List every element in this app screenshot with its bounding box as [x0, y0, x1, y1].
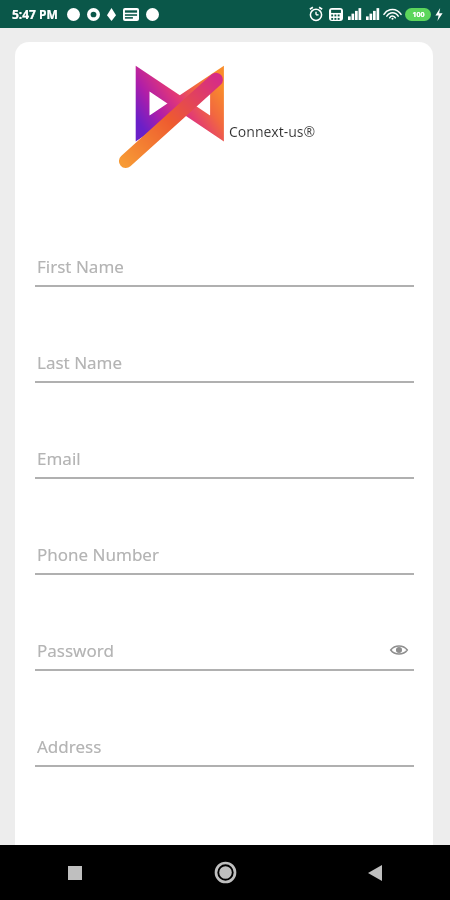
button[interactable]: Home — [150, 845, 300, 900]
staticText: Password — [37, 639, 114, 662]
button[interactable]: Back — [300, 845, 450, 900]
staticText: 5:47 PM — [12, 6, 58, 22]
staticText: Phone Number — [37, 543, 159, 566]
button[interactable]: First Name — [15, 247, 433, 343]
staticText: Address — [37, 735, 102, 758]
button[interactable]: Password — [15, 631, 433, 727]
button[interactable]: Recent apps — [0, 845, 150, 900]
staticText: First Name — [37, 255, 124, 278]
staticText: Email — [37, 447, 81, 470]
button[interactable]: Phone Number — [15, 535, 433, 631]
button[interactable]: Last Name — [15, 343, 433, 439]
button[interactable]: Email — [15, 439, 433, 535]
button[interactable]: Show password — [387, 638, 411, 662]
button[interactable]: Address — [15, 727, 433, 823]
staticText: 100 — [412, 10, 425, 20]
staticText: Last Name — [37, 351, 123, 374]
staticText: Connext-us® — [229, 122, 316, 141]
